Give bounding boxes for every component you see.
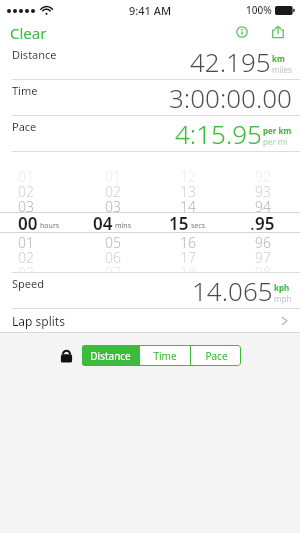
staticText: 4:15.95 — [175, 116, 262, 150]
staticText: 95 — [255, 212, 275, 233]
staticText: Speed — [12, 276, 44, 291]
button[interactable]: Distance — [0, 44, 300, 79]
staticText: 03 — [105, 197, 121, 212]
staticText: 92 — [255, 167, 271, 182]
staticText: Pace — [205, 349, 228, 363]
staticText: Pace — [12, 119, 37, 134]
staticText: 02 — [18, 182, 34, 197]
button[interactable]: Time — [140, 345, 190, 366]
staticText: per mi — [263, 136, 288, 147]
staticText: km — [272, 53, 285, 64]
button[interactable]: Distance — [82, 345, 139, 366]
staticText: Distance — [90, 349, 131, 363]
staticText: 9:41 AM — [129, 3, 172, 18]
staticText: 97 — [255, 248, 271, 263]
button[interactable]: Speed — [0, 273, 300, 308]
staticText: 3:00:00.00 — [169, 80, 292, 114]
button[interactable]: Lap splits — [0, 309, 300, 332]
staticText: 14 — [180, 197, 196, 212]
staticText: mph — [274, 293, 292, 304]
staticText: 12 — [180, 167, 196, 182]
staticText: 17 — [180, 248, 196, 263]
staticText: Clear — [10, 23, 47, 41]
staticText: Lap splits — [12, 313, 65, 329]
button[interactable]: Time — [0, 80, 300, 115]
staticText: Distance — [12, 47, 57, 62]
staticText: 18 — [180, 263, 196, 272]
staticText: 93 — [255, 182, 271, 197]
staticText: Time — [12, 83, 38, 98]
staticText: 07 — [105, 263, 121, 272]
staticText: mins — [115, 221, 132, 231]
staticText: 100% — [246, 3, 272, 17]
button[interactable]: Pace — [0, 116, 300, 151]
staticText: kph — [274, 282, 290, 293]
button[interactable]: Pace — [191, 345, 241, 366]
staticText: 02 — [105, 182, 121, 197]
staticText: 04 — [93, 212, 113, 233]
button[interactable]: 01 — [0, 152, 300, 272]
staticText: 42.195 — [190, 44, 271, 78]
staticText: hours — [40, 221, 60, 231]
staticText: 01 — [18, 167, 34, 182]
staticText: miles — [272, 64, 292, 75]
button[interactable]: Info — [228, 20, 256, 44]
staticText: 01 — [18, 233, 34, 248]
staticText: 98 — [255, 263, 271, 272]
staticText: . — [250, 212, 255, 233]
staticText: 13 — [180, 182, 196, 197]
staticText: 00 — [18, 212, 38, 233]
staticText: 06 — [105, 248, 121, 263]
staticText: per km — [263, 125, 292, 136]
staticText: 05 — [105, 233, 121, 248]
staticText: 01 — [105, 167, 121, 182]
staticText: 96 — [255, 233, 271, 248]
button[interactable]: Share — [264, 20, 292, 44]
staticText: 94 — [255, 197, 271, 212]
staticText: Time — [153, 349, 177, 363]
staticText: 15 — [169, 212, 189, 233]
staticText: 02 — [18, 248, 34, 263]
staticText: 16 — [180, 233, 196, 248]
staticText: 03 — [18, 197, 34, 212]
staticText: 03 — [18, 263, 34, 272]
staticText: 14.065 — [192, 273, 273, 307]
staticText: secs — [191, 221, 206, 231]
button[interactable]: Clear — [0, 20, 57, 44]
